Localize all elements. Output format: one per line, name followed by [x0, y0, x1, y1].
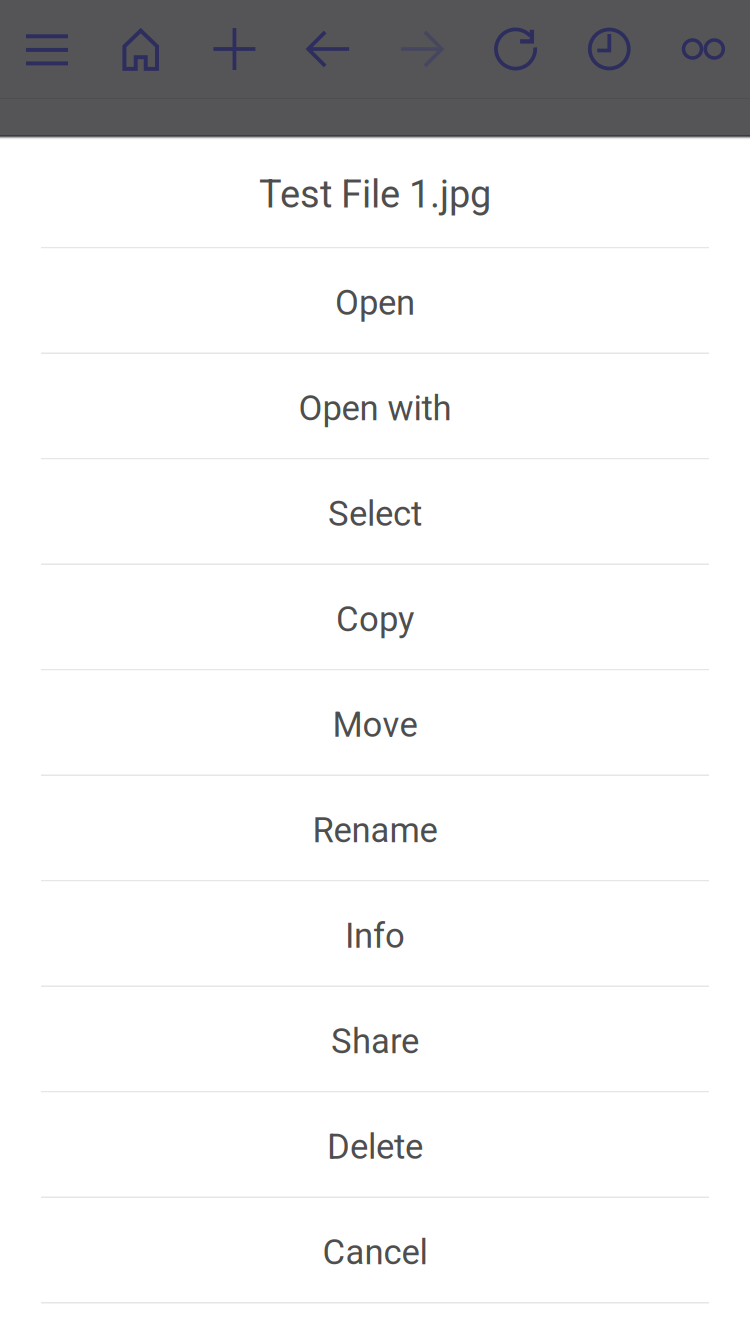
button[interactable]: Open	[0, 248, 750, 352]
button[interactable]: Back	[302, 23, 354, 75]
button[interactable]: Select all	[677, 23, 729, 75]
button[interactable]: Forward	[396, 23, 448, 75]
staticText: Cancel	[322, 1232, 427, 1273]
staticText: Rename	[312, 810, 437, 851]
button[interactable]: Rename	[0, 776, 750, 880]
button[interactable]: Move	[0, 670, 750, 774]
button[interactable]: Copy	[0, 565, 750, 669]
staticText: Select	[328, 494, 422, 534]
button[interactable]: Add	[208, 23, 260, 75]
button[interactable]: Recent	[583, 23, 635, 75]
button[interactable]: Info	[0, 881, 750, 985]
button[interactable]: Menu	[21, 23, 73, 75]
staticText: Open	[335, 283, 415, 323]
staticText: Info	[345, 916, 405, 956]
staticText: Open with	[298, 388, 451, 429]
button[interactable]: Select	[0, 459, 750, 563]
staticText: Share	[331, 1021, 419, 1062]
button[interactable]: Cancel	[0, 1198, 750, 1302]
staticText: Delete	[327, 1127, 423, 1167]
staticText: Copy	[336, 599, 414, 640]
button[interactable]: Delete	[0, 1092, 750, 1196]
button[interactable]: Refresh	[490, 23, 542, 75]
button[interactable]: Share	[0, 987, 750, 1091]
button[interactable]: Open with	[0, 354, 750, 458]
button[interactable]: Home	[115, 23, 167, 75]
staticText: Move	[332, 705, 417, 745]
staticText: Test File 1.jpg	[259, 172, 491, 217]
